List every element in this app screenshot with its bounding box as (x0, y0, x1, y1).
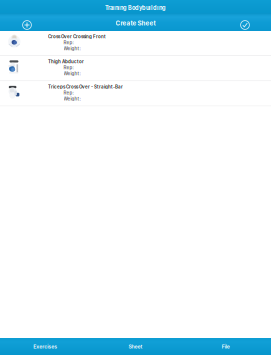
button[interactable]: Exercises (0, 337, 90, 355)
staticText: Weight: (63, 96, 80, 102)
staticText: Weight: (63, 71, 80, 76)
button[interactable]: File (181, 337, 271, 355)
button[interactable]: Add exercise (0, 16, 40, 34)
button[interactable]: Thigh Abductor (0, 56, 271, 81)
staticText: Rep: (63, 40, 73, 45)
staticText: File (222, 343, 230, 350)
staticText: Thigh Abductor (48, 59, 84, 64)
staticText: Rep: (63, 90, 73, 96)
staticText: Exercises (33, 343, 57, 350)
staticText: Weight: (63, 46, 80, 51)
staticText: Rep: (63, 65, 73, 70)
button[interactable]: Triceps Cross Over - Straight-Bar (0, 81, 271, 106)
staticText: Create Sheet (115, 19, 155, 27)
button[interactable]: Save sheet (231, 16, 271, 34)
staticText: Sheet (128, 343, 142, 350)
staticText: Triceps Cross Over - Straight-Bar (48, 84, 123, 90)
button[interactable]: Cross Over Crossing Front (0, 31, 271, 56)
staticText: Cross Over Crossing Front (48, 34, 106, 39)
button[interactable]: Sheet (90, 337, 181, 355)
staticText: Training Bodybuilding (105, 5, 166, 11)
